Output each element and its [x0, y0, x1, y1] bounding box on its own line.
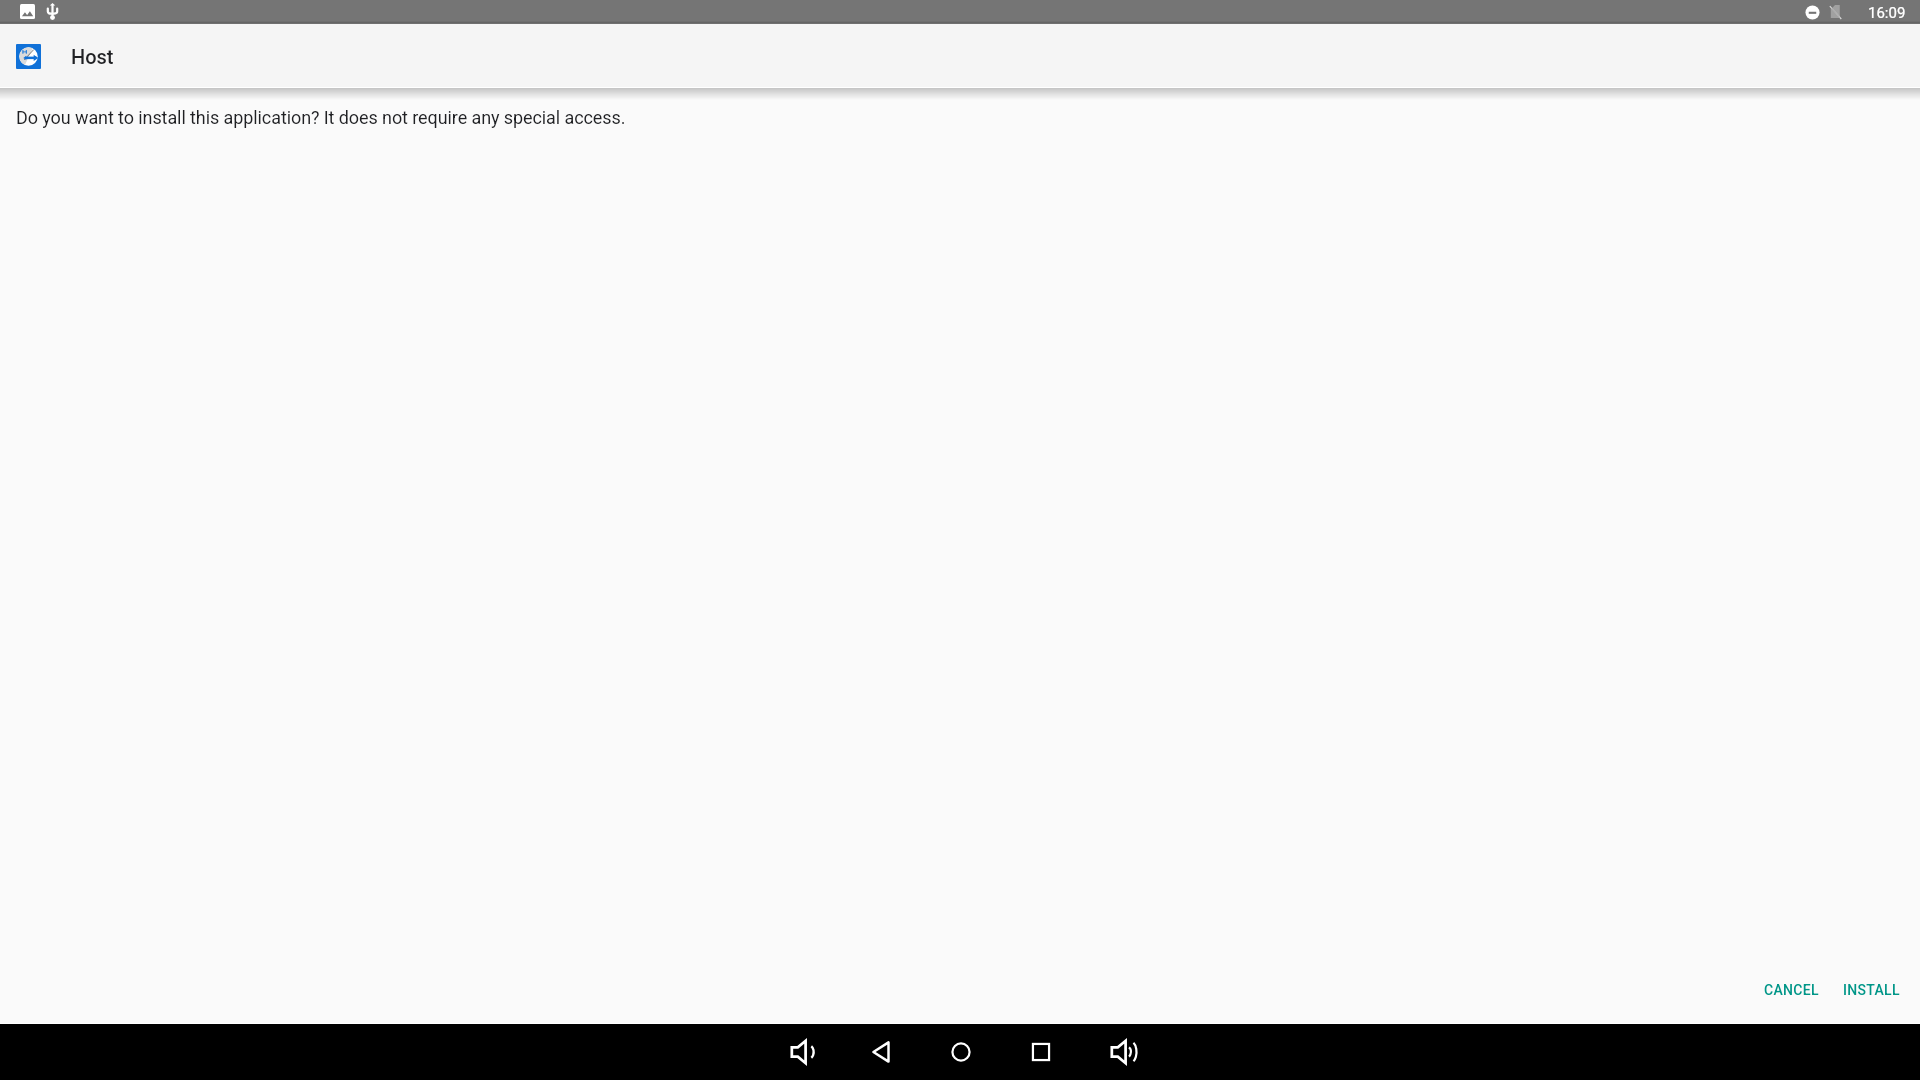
staticText: 16:09 — [1868, 4, 1906, 22]
button[interactable]: CANCEL — [1752, 969, 1831, 1011]
button[interactable]: Back — [856, 1026, 908, 1078]
staticText: Host — [71, 45, 114, 68]
staticText: INSTALL — [1843, 982, 1900, 998]
button[interactable]: INSTALL — [1831, 969, 1912, 1011]
button[interactable]: Volume up — [1097, 1026, 1149, 1078]
button[interactable]: Recents — [1015, 1026, 1067, 1078]
button[interactable]: Home — [935, 1026, 987, 1078]
staticText: CANCEL — [1764, 982, 1819, 998]
staticText: Do you want to install this application?… — [16, 107, 626, 128]
button[interactable]: Volume down — [777, 1026, 829, 1078]
